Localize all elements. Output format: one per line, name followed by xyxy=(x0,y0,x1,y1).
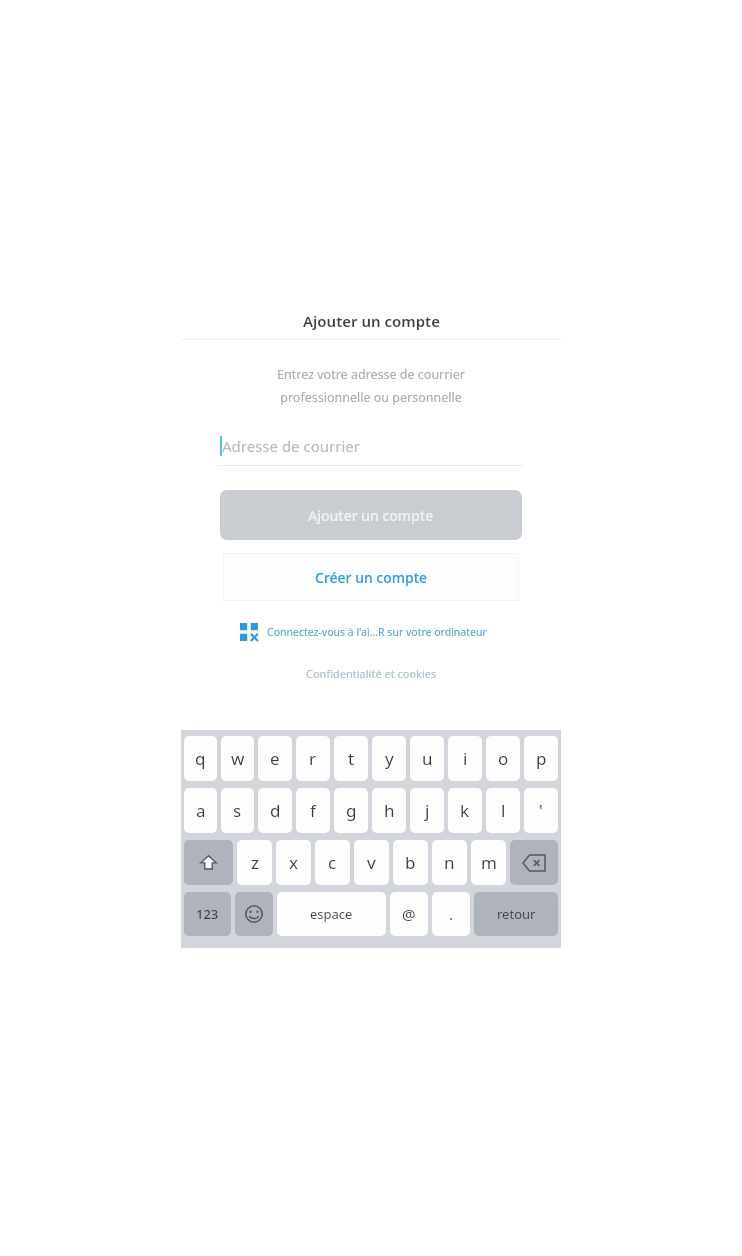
staticText: o xyxy=(498,747,509,770)
button[interactable]: o xyxy=(486,736,520,781)
staticText: l xyxy=(501,799,506,822)
button[interactable]: 123 xyxy=(184,892,231,936)
staticText: f xyxy=(310,799,316,822)
staticText: 123 xyxy=(196,905,219,923)
staticText: t xyxy=(348,747,355,770)
staticText: k xyxy=(460,799,470,822)
button[interactable]: e xyxy=(258,736,292,781)
staticText: a xyxy=(196,799,206,822)
button[interactable]: p xyxy=(524,736,558,781)
button[interactable]: m xyxy=(471,840,506,885)
button[interactable]: j xyxy=(410,788,444,833)
staticText: Confidentialité et cookies xyxy=(306,666,437,681)
staticText: Ajouter un compte xyxy=(303,311,440,331)
staticText: . xyxy=(449,904,454,924)
staticText: x xyxy=(289,851,298,874)
button[interactable]: y xyxy=(372,736,406,781)
button[interactable]: h xyxy=(372,788,406,833)
button[interactable]: b xyxy=(393,840,428,885)
staticText: Ajouter un compte xyxy=(308,506,434,525)
button[interactable]: Adresse de courrier xyxy=(220,426,522,466)
button[interactable]: z xyxy=(237,840,272,885)
staticText: n xyxy=(444,851,455,874)
button[interactable]: ' xyxy=(524,788,558,833)
staticText: Créer un compte xyxy=(315,568,428,587)
button[interactable]: t xyxy=(334,736,368,781)
button[interactable]: s xyxy=(221,788,254,833)
staticText: h xyxy=(384,799,395,822)
staticText: b xyxy=(405,851,416,874)
button[interactable]: f xyxy=(296,788,330,833)
staticText: w xyxy=(231,747,245,770)
button[interactable]: i xyxy=(448,736,482,781)
button[interactable]: a xyxy=(184,788,217,833)
button[interactable]: espace xyxy=(277,892,386,936)
button[interactable]: Se connecter avec un code QR xyxy=(220,619,522,645)
staticText: ' xyxy=(539,799,543,822)
staticText: espace xyxy=(310,905,353,923)
button[interactable]: g xyxy=(334,788,368,833)
staticText: z xyxy=(251,851,259,874)
other: Se connecter avec un code QR xyxy=(240,623,258,641)
button[interactable]: u xyxy=(410,736,444,781)
button[interactable]: Majuscule xyxy=(184,840,233,885)
staticText: d xyxy=(270,799,281,822)
staticText: Entrez votre adresse de courrier xyxy=(277,366,465,383)
staticText: e xyxy=(270,747,280,770)
staticText: s xyxy=(233,799,242,822)
staticText: u xyxy=(422,747,433,770)
staticText: q xyxy=(195,747,206,770)
staticText: j xyxy=(425,799,430,822)
button[interactable]: Retour arrière xyxy=(510,840,558,885)
button[interactable]: k xyxy=(448,788,482,833)
staticText: retour xyxy=(497,905,536,923)
staticText: professionnelle ou personnelle xyxy=(280,389,462,406)
button[interactable]: w xyxy=(221,736,254,781)
button[interactable]: Confidentialité et cookies xyxy=(300,663,443,684)
button[interactable]: l xyxy=(486,788,520,833)
button[interactable]: Emoji xyxy=(235,892,273,936)
button[interactable]: r xyxy=(296,736,330,781)
staticText: Adresse de courrier xyxy=(222,436,360,456)
button[interactable]: . xyxy=(432,892,470,936)
staticText: Connectez-vous à l'ai...R sur votre ordi… xyxy=(267,625,487,639)
button[interactable]: x xyxy=(276,840,311,885)
staticText: @ xyxy=(402,904,416,924)
staticText: r xyxy=(309,747,317,770)
staticText: v xyxy=(367,851,376,874)
staticText: c xyxy=(328,851,337,874)
staticText: g xyxy=(346,799,357,822)
button[interactable]: Ajouter un compte xyxy=(220,490,522,540)
button[interactable]: q xyxy=(184,736,217,781)
staticText: p xyxy=(536,747,547,770)
staticText: y xyxy=(385,747,394,770)
button[interactable]: c xyxy=(315,840,350,885)
button[interactable]: n xyxy=(432,840,467,885)
button[interactable]: v xyxy=(354,840,389,885)
staticText: i xyxy=(463,747,468,770)
staticText: m xyxy=(481,851,497,874)
button[interactable]: @ xyxy=(390,892,428,936)
button[interactable]: Créer un compte xyxy=(223,553,519,601)
button[interactable]: d xyxy=(258,788,292,833)
button[interactable]: retour xyxy=(474,892,558,936)
